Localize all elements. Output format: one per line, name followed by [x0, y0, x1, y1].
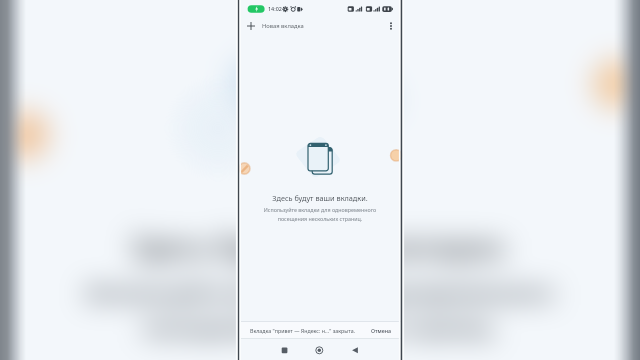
button[interactable]: Главный экран	[308, 339, 331, 360]
button[interactable]: Назад	[343, 339, 366, 360]
button[interactable]: Недавние приложения	[273, 339, 296, 360]
staticText: Отмена	[371, 327, 392, 334]
staticText: Новая вкладка	[262, 22, 304, 30]
staticText: 14:02	[268, 5, 282, 12]
staticText: Здесь будут ваши вкладки.	[238, 193, 402, 203]
button[interactable]: Новая вкладка	[240, 15, 322, 37]
staticText: Используйте вкладки для одновременного п…	[238, 206, 402, 222]
button[interactable]: Ещё	[380, 15, 402, 37]
button[interactable]: Отмена	[365, 323, 398, 338]
staticText: Здесь будут ваши вкладки.	[0, 227, 640, 266]
staticText: Используйте вкладки для одновременного п…	[0, 277, 640, 340]
staticText: Вкладка "привет — Яндекс: н..." закрыта.	[250, 327, 356, 334]
